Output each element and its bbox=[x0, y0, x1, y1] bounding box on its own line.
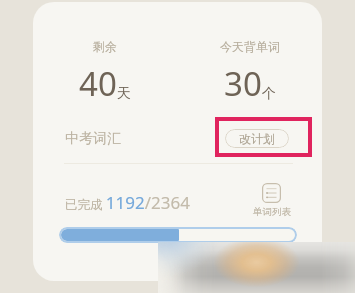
button[interactable]: 改计划 bbox=[225, 129, 289, 148]
button[interactable]: 单词列表 bbox=[252, 183, 291, 218]
staticText: 中考词汇 bbox=[65, 130, 121, 148]
staticText: 今天背单词 bbox=[220, 39, 280, 54]
staticText: 剩余 bbox=[93, 39, 117, 54]
staticText: 单词列表 bbox=[253, 206, 291, 218]
staticText: 个 bbox=[262, 85, 276, 103]
staticText: 30 bbox=[224, 61, 262, 106]
staticText: 天 bbox=[117, 85, 131, 103]
other: 单词列表 bbox=[262, 183, 281, 203]
staticText: 40 bbox=[79, 61, 117, 106]
staticText: 已完成 1192/2364 bbox=[65, 191, 190, 214]
staticText: 改计划 bbox=[239, 131, 275, 146]
